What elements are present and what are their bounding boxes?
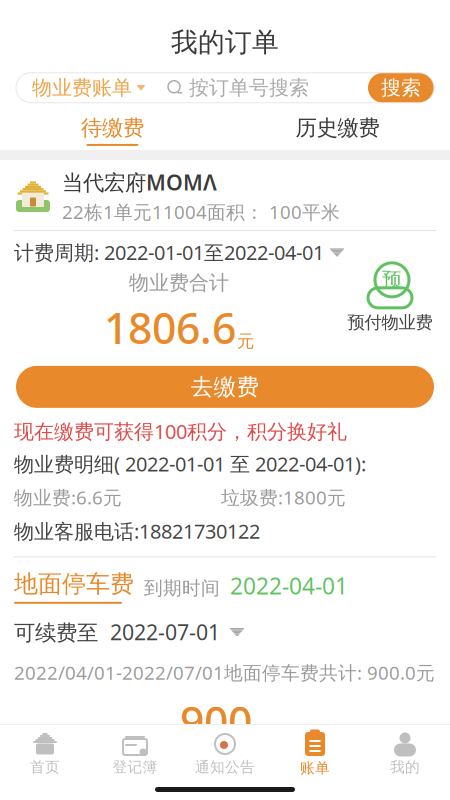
staticText: 我的订单 [171,26,279,59]
staticText: 当代宏府MOMΛ [62,168,217,196]
button[interactable]: 首页 [0,726,90,776]
staticText: 待缴费 [81,115,144,141]
staticText: 2022-04-01 [230,571,348,601]
staticText: 可续费至 2022-07-01 [14,618,220,646]
staticText: 按订单号搜索 [189,75,309,100]
button[interactable]: 我的 [360,726,450,776]
staticText: 预 [382,267,402,292]
staticText: 现在缴费可获得100积分，积分换好礼 [14,418,347,444]
staticText: 通知公告 [195,758,255,776]
staticText: 物业费:6.6元 [14,485,122,510]
button[interactable]: 去缴费 [16,366,434,408]
button[interactable]: 预 [344,262,436,333]
button[interactable]: 登记簿 [90,726,180,776]
staticText: 900 [180,693,252,750]
staticText: 预付物业费 [347,312,432,333]
staticText: 元 [237,331,254,352]
button[interactable]: 搜索 [368,73,434,103]
staticText: 账单 [300,759,330,777]
staticText: 去续费 [190,769,259,796]
staticText: 物业费账单 [32,75,132,100]
staticText: 我的 [390,758,420,776]
staticText: 首页 [30,758,60,776]
button[interactable]: 通知公告 [180,726,270,776]
staticText: 垃圾费:1800元 [221,485,346,510]
button[interactable]: 历史缴费 [225,115,450,146]
staticText: 地面停车费 [14,569,134,599]
staticText: 到期时间 [144,577,220,600]
button[interactable]: 计费周期: 2022-01-01至2022-04-01 [14,239,344,266]
staticText: 登记簿 [112,758,157,776]
button[interactable]: 待缴费 [0,115,225,146]
staticText: 元 [253,724,270,746]
button[interactable]: 账单 [270,725,360,777]
staticText: 物业费合计 [129,271,229,295]
staticText: 搜索 [381,75,421,100]
staticText: 物业费明细( 2022-01-01 至 2022-04-01): [14,450,366,477]
staticText: 计费周期: 2022-01-01至2022-04-01 [14,239,324,266]
staticText: 2022/04/01-2022/07/01地面停车费共计: 900.0元 [14,660,435,685]
staticText: 物业客服电话:18821730122 [14,518,260,544]
button[interactable]: 去续费 [16,762,434,800]
staticText: 22栋1单元11004面积： 100平米 [62,199,340,224]
button[interactable]: 可续费至 2022-07-01 [0,604,450,646]
staticText: 1806.6 [104,299,236,356]
staticText: 去缴费 [190,373,259,401]
button[interactable]: 物业费账单 [16,75,145,100]
staticText: 历史缴费 [295,115,379,141]
